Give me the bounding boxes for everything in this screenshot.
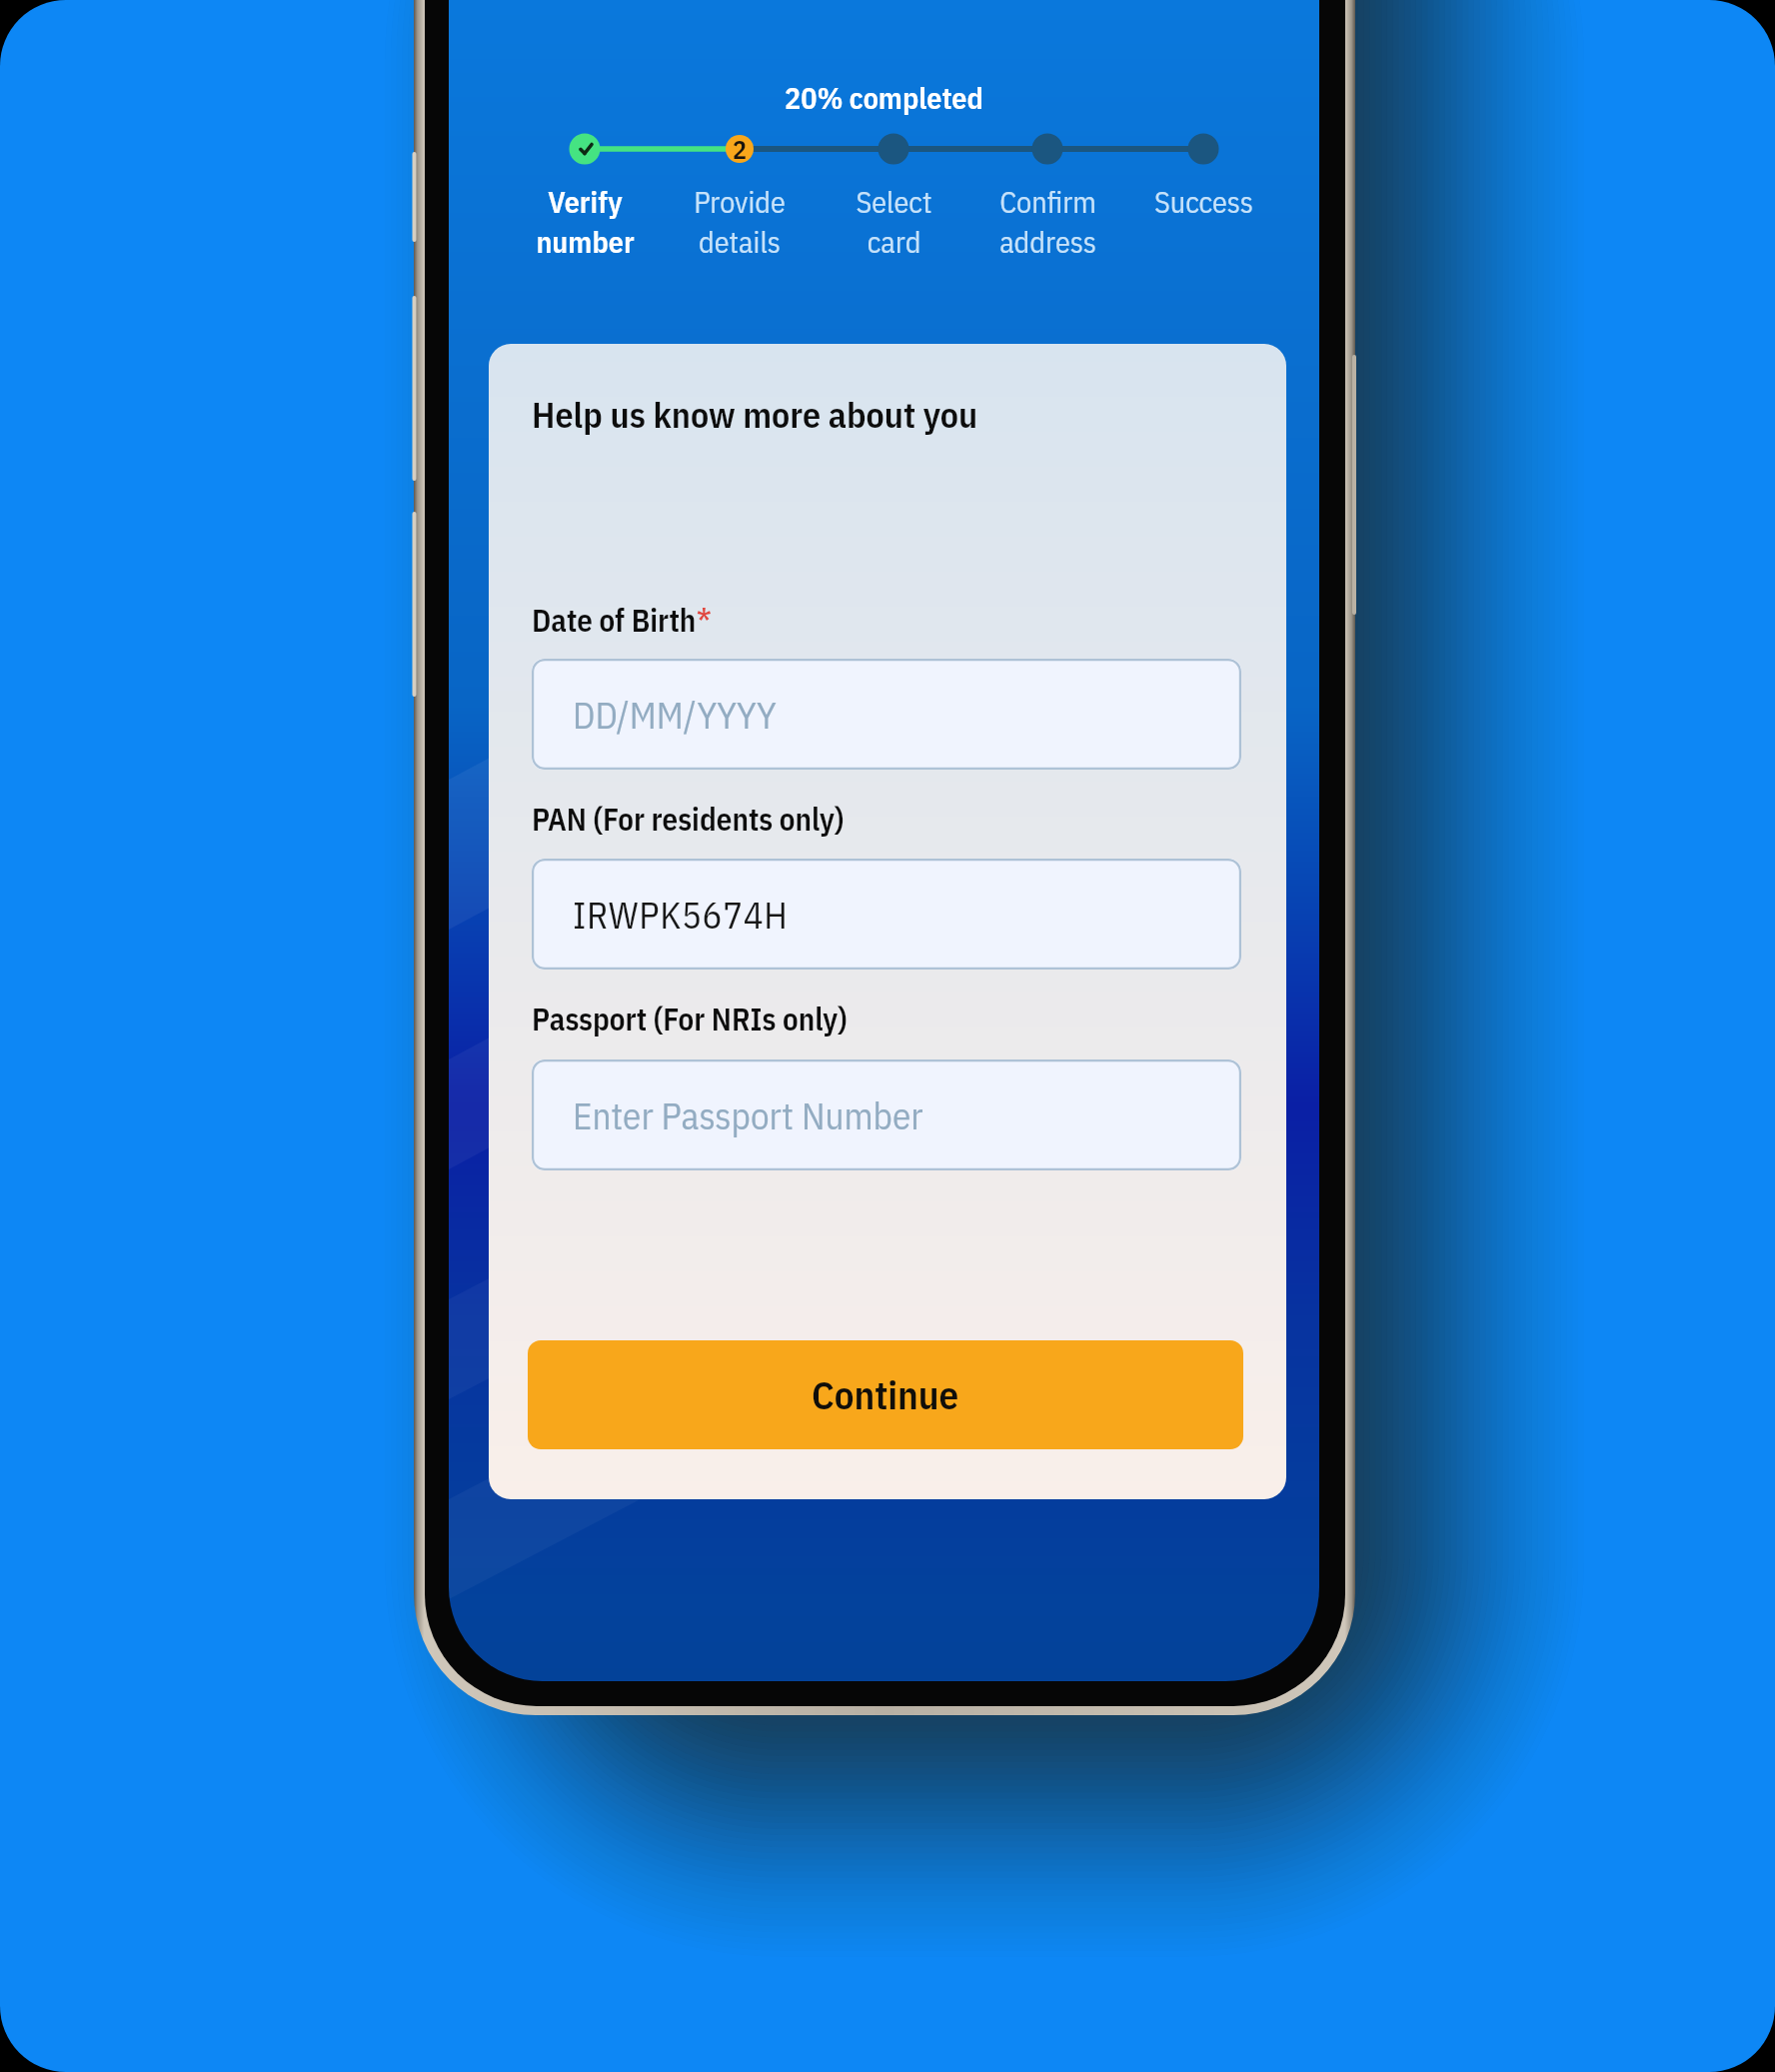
button[interactable]: IRWPK5674H (532, 859, 1241, 970)
staticText: Passport (For NRIs only) (532, 999, 848, 1038)
button[interactable]: Success (1093, 182, 1313, 221)
button[interactable]: Select card (784, 182, 1003, 261)
staticText: Help us know more about you (532, 391, 978, 438)
staticText: Continue (812, 1369, 959, 1420)
button[interactable]: Enter Passport Number (532, 1059, 1241, 1170)
staticText: Success (1154, 182, 1253, 221)
staticText: Enter Passport Number (573, 1091, 923, 1139)
staticText: Provide details (694, 182, 786, 261)
staticText: Date of Birth (532, 600, 697, 640)
staticText: Confirm address (999, 182, 1096, 261)
button[interactable]: Provide details (630, 182, 850, 261)
button[interactable]: Verify number (475, 182, 695, 261)
button[interactable]: Confirm address (937, 182, 1157, 261)
staticText: DD/MM/YYYY (573, 691, 777, 739)
staticText: 2 (733, 132, 748, 166)
button[interactable]: DD/MM/YYYY (532, 659, 1241, 770)
staticText: Select card (856, 182, 932, 261)
staticText: 20% completed (785, 78, 983, 117)
staticText: IRWPK5674H (573, 891, 789, 939)
staticText: PAN (For residents only) (532, 799, 845, 839)
staticText: * (697, 600, 712, 640)
button[interactable]: Continue (528, 1340, 1243, 1449)
staticText: Verify number (536, 182, 635, 261)
